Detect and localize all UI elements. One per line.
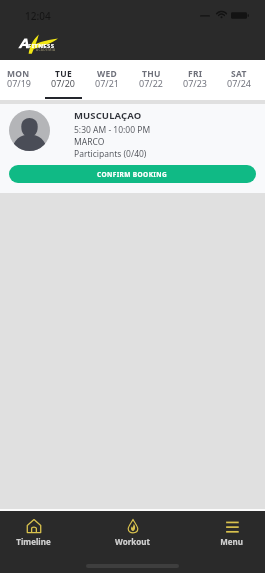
staticText: MARCO	[74, 136, 105, 148]
staticText: MUSCULAÇAO	[74, 109, 142, 122]
staticText: ACADEMIA	[36, 48, 56, 52]
staticText: FITNESS	[28, 42, 55, 50]
staticText: 07/19	[7, 77, 31, 89]
staticText: TUE	[55, 68, 72, 80]
staticText: Menu	[220, 536, 243, 547]
button[interactable]: Menu tab	[198, 519, 265, 547]
staticText: Workout	[115, 536, 150, 547]
staticText: 07/20	[51, 77, 75, 89]
staticText: Participants (0/40)	[74, 148, 147, 160]
button[interactable]: THU	[129, 60, 173, 100]
staticText: WED	[97, 68, 118, 80]
staticText: THU	[142, 68, 161, 80]
staticText: 07/24	[227, 77, 251, 89]
button[interactable]: Workout tab	[99, 519, 166, 547]
staticText: CONFIRM BOOKING	[97, 170, 168, 179]
button[interactable]: SAT	[217, 60, 261, 100]
button[interactable]: WED	[85, 60, 129, 100]
staticText: 07/21	[95, 77, 119, 89]
staticText: 07/23	[183, 77, 207, 89]
button[interactable]: MUSCULAÇAO	[0, 104, 265, 193]
staticText: FRI	[188, 68, 203, 80]
staticText: SAT	[231, 68, 247, 80]
button[interactable]: TUE	[41, 60, 85, 100]
staticText: 12:04	[25, 9, 51, 23]
staticText: Timeline	[16, 536, 51, 547]
button[interactable]: Timeline tab	[0, 519, 67, 547]
staticText: 5:30 AM - 10:00 PM	[74, 124, 151, 136]
staticText: MON	[7, 68, 30, 80]
button[interactable]: MON	[0, 60, 41, 100]
button[interactable]: CONFIRM BOOKING	[9, 165, 256, 183]
button[interactable]: FRI	[173, 60, 217, 100]
staticText: 07/22	[139, 77, 163, 89]
